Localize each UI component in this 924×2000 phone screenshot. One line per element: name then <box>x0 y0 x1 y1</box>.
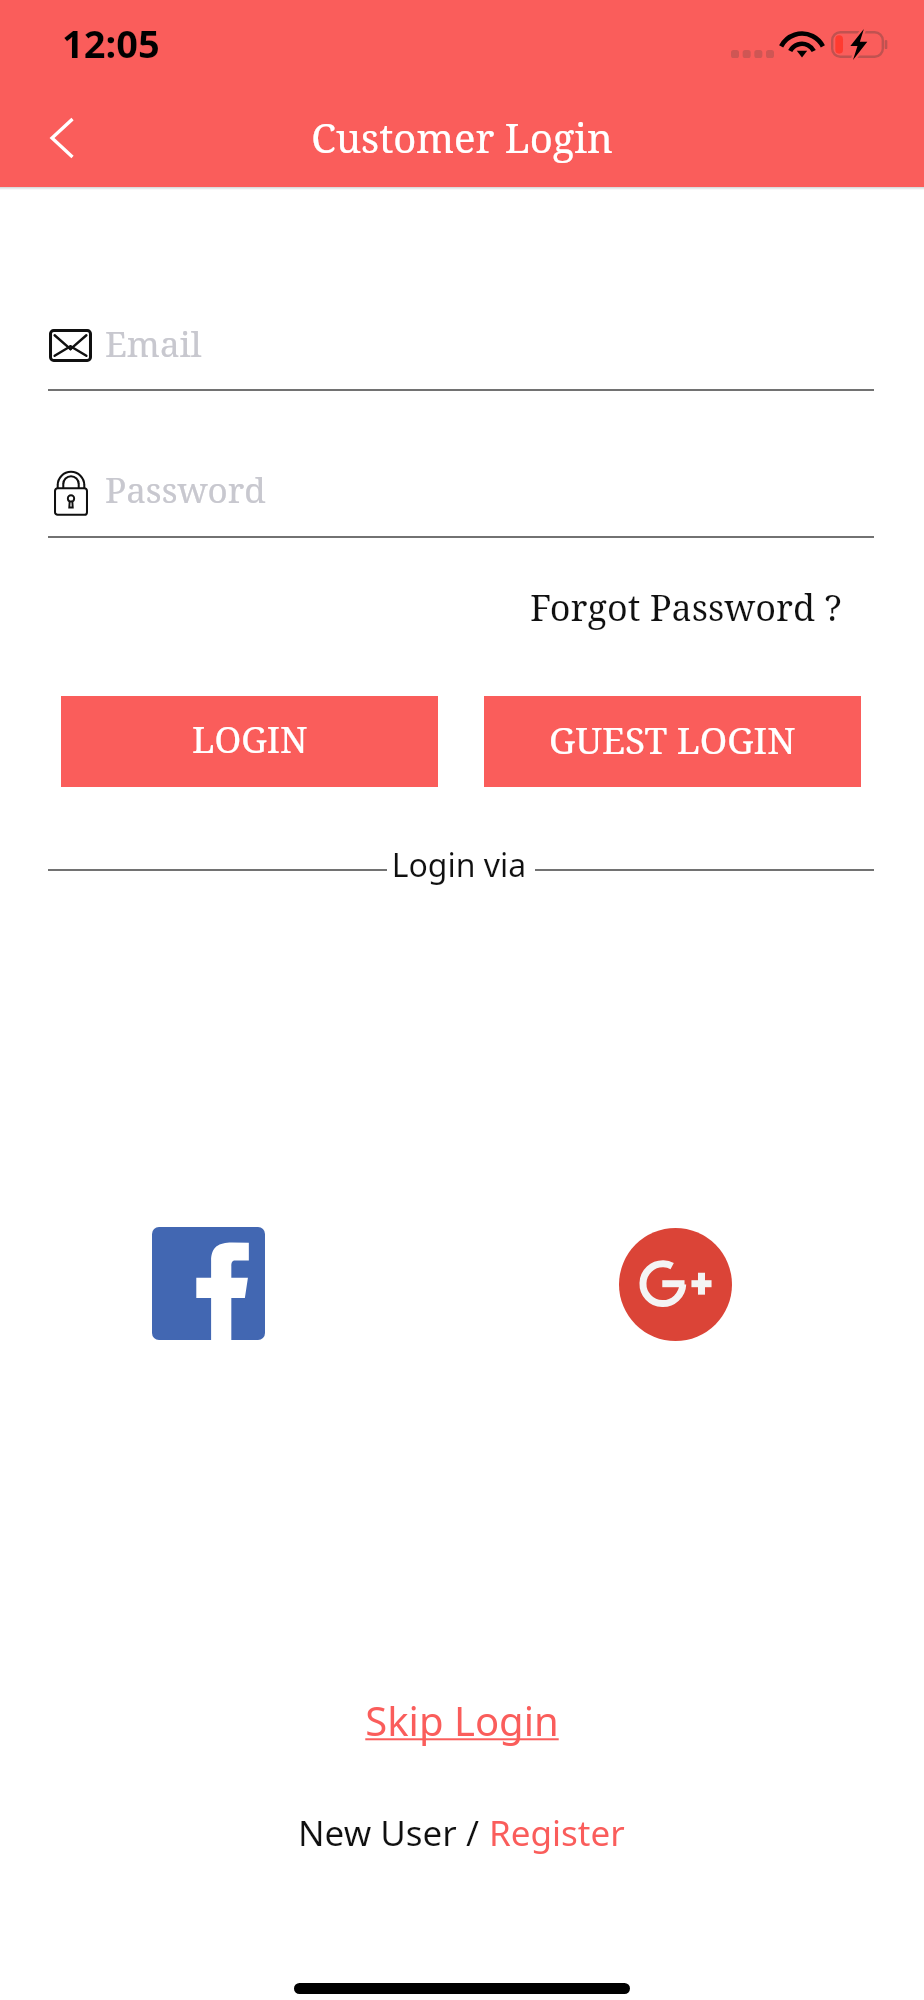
button[interactable]: Sign in with Google Plus <box>619 1228 732 1341</box>
button[interactable]: LOGIN <box>61 696 438 787</box>
button[interactable]: Forgot Password ? <box>514 570 858 634</box>
staticText: 12:05 <box>62 17 160 69</box>
staticText: Login via <box>0 843 921 887</box>
button[interactable]: Email <box>48 318 874 391</box>
staticText: GUEST LOGIN <box>549 714 796 764</box>
button[interactable]: Password <box>48 465 874 538</box>
button[interactable]: Skip Login <box>356 1688 568 1752</box>
staticText: Email <box>105 320 202 368</box>
staticText: Forgot Password ? <box>530 583 842 632</box>
button[interactable]: Sign in with Facebook <box>152 1227 265 1340</box>
staticText: LOGIN <box>192 715 308 764</box>
staticText: Customer Login <box>0 110 924 164</box>
staticText: Skip Login <box>365 1693 559 1747</box>
staticText: New User / <box>298 1809 489 1857</box>
button[interactable]: Back <box>20 102 102 174</box>
button[interactable]: Register <box>489 1809 625 1857</box>
staticText: Password <box>105 466 266 514</box>
button[interactable]: GUEST LOGIN <box>484 696 861 787</box>
